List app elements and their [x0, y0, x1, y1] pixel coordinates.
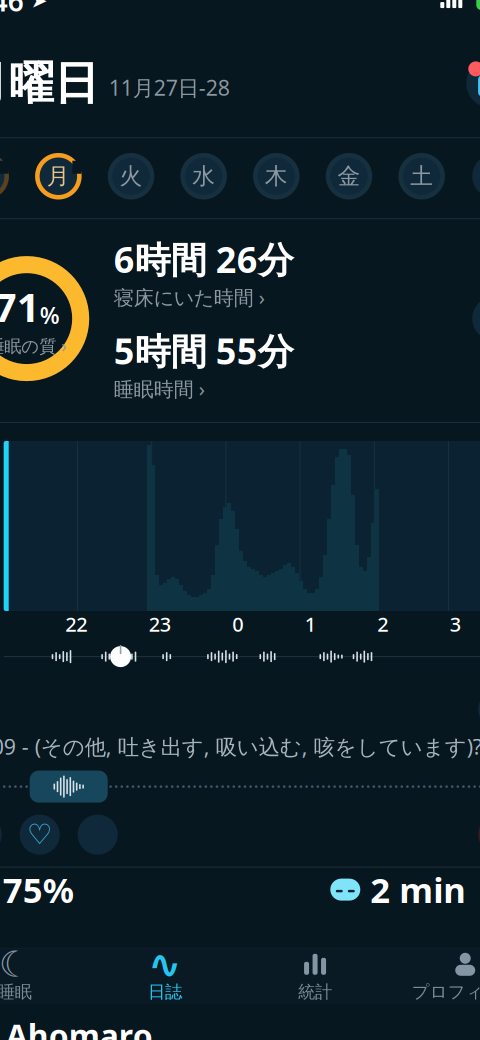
button[interactable]: 71 [0, 254, 92, 384]
staticText: 統計 [298, 981, 332, 1003]
button[interactable]: Collapse [476, 688, 480, 730]
staticText: 3:46 [0, 0, 24, 19]
button[interactable]: プロフィール [390, 948, 480, 1004]
staticText: 睡眠 [0, 981, 32, 1003]
staticText: 寝床にいた時間 › [114, 284, 265, 311]
button[interactable]: 5時間 55分 [114, 313, 294, 402]
button[interactable]: 6時間 26分 [114, 235, 294, 311]
staticText: 金 [337, 162, 360, 190]
button[interactable]: ☾ [0, 948, 90, 1004]
button[interactable]: Analyze audio [0, 813, 4, 857]
button[interactable]: Calendar [464, 57, 480, 109]
button[interactable]: Notes [470, 152, 480, 200]
button[interactable]: Favorite [18, 813, 62, 857]
staticText: 木 [265, 162, 288, 190]
button[interactable]: 木 [252, 152, 300, 200]
button[interactable]: ∿ [90, 948, 240, 1004]
staticText: Ahomaro [6, 1014, 153, 1040]
staticText: 火 [119, 162, 142, 190]
staticText: 71 [0, 280, 40, 333]
staticText: 23:09 - (その他, 吐き出す, 吸い込む, 咳をしています)? [0, 732, 480, 761]
staticText: ♡ [27, 819, 52, 850]
staticText: 6時間 26分 [114, 235, 294, 283]
staticText: 22 [65, 611, 87, 637]
staticText: プロフィール [412, 981, 480, 1003]
staticText: ➤ [24, 0, 48, 12]
button[interactable]: Delete [476, 813, 480, 857]
staticText: 2 min [370, 867, 466, 913]
staticText: 水 [192, 162, 215, 190]
staticText: % [40, 300, 60, 330]
staticText: 土 [410, 162, 433, 190]
staticText: ☾ [0, 944, 31, 985]
staticText: 23 [149, 611, 171, 637]
staticText: 1 [305, 611, 316, 637]
staticText: ∿ [148, 942, 182, 987]
staticText: 2 [377, 611, 388, 637]
staticText: 月曜日 [0, 56, 99, 111]
button[interactable]: 火 [107, 152, 155, 200]
staticText: 100 [479, 0, 480, 12]
button[interactable]: Share recording [76, 813, 120, 857]
staticText: 日誌 [148, 981, 182, 1003]
staticText: 0 [232, 611, 243, 637]
staticText: 睡眠の質 › [0, 334, 66, 357]
button[interactable]: 日 [0, 152, 10, 200]
button[interactable]: 月 [34, 152, 82, 200]
staticText: 11月27日-28 [109, 73, 230, 101]
button[interactable]: 水 [180, 152, 228, 200]
staticText: 睡眠時間 › [114, 375, 205, 402]
staticText: 5時間 55分 [114, 327, 294, 374]
button[interactable]: Share [470, 295, 480, 343]
staticText: 月 [47, 162, 70, 190]
button[interactable]: 統計 [240, 948, 390, 1004]
button[interactable]: 金 [325, 152, 373, 200]
staticText: 3 [450, 611, 461, 637]
button[interactable]: 土 [398, 152, 446, 200]
staticText: 75% [3, 867, 74, 913]
